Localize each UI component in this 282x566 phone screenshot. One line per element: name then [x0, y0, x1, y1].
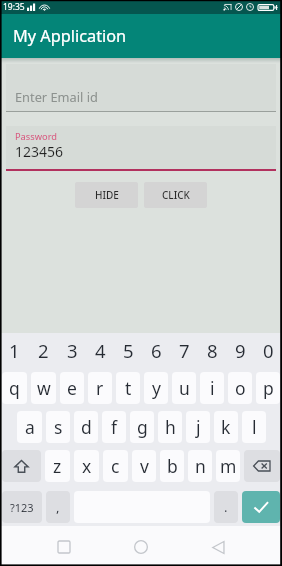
button[interactable]: u: [172, 372, 196, 404]
button[interactable]: Password: [6, 126, 276, 171]
staticText: r: [96, 376, 104, 400]
button[interactable]: CLICK: [144, 182, 207, 208]
staticText: o: [235, 376, 246, 400]
staticText: b: [167, 454, 178, 478]
button[interactable]: w: [31, 372, 56, 404]
button[interactable]: b: [160, 450, 184, 482]
staticText: HIDE: [95, 188, 119, 202]
button[interactable]: 6: [142, 333, 170, 368]
button[interactable]: a: [17, 411, 42, 443]
button[interactable]: Home: [121, 527, 161, 566]
staticText: q: [9, 376, 20, 400]
button[interactable]: Recents: [44, 527, 84, 566]
staticText: 4: [95, 338, 106, 363]
staticText: .: [224, 498, 228, 516]
staticText: z: [53, 454, 62, 478]
staticText: c: [111, 454, 120, 478]
staticText: 123456: [15, 142, 64, 161]
staticText: d: [81, 415, 92, 439]
button[interactable]: ,: [46, 491, 70, 523]
staticText: 3: [67, 338, 78, 363]
button[interactable]: Back: [198, 527, 238, 566]
button[interactable]: k: [214, 411, 238, 443]
button[interactable]: s: [46, 411, 70, 443]
staticText: k: [221, 415, 231, 439]
staticText: 1: [9, 338, 20, 363]
staticText: 5: [123, 338, 134, 363]
button[interactable]: d: [74, 411, 98, 443]
button[interactable]: e: [60, 372, 84, 404]
button[interactable]: y: [144, 372, 168, 404]
staticText: f: [111, 415, 118, 439]
staticText: l: [252, 415, 257, 439]
button[interactable]: 1: [0, 333, 29, 368]
staticText: m: [220, 454, 237, 478]
button[interactable]: h: [158, 411, 182, 443]
staticText: a: [25, 415, 35, 439]
button[interactable]: n: [188, 450, 212, 482]
button[interactable]: q: [2, 372, 27, 404]
button[interactable]: 2: [29, 333, 58, 368]
staticText: g: [137, 415, 148, 439]
button[interactable]: t: [116, 372, 140, 404]
button[interactable]: 0: [254, 333, 282, 368]
staticText: My Application: [13, 25, 127, 47]
staticText: ?123: [10, 500, 34, 515]
button[interactable]: z: [45, 450, 70, 482]
button[interactable]: 8: [198, 333, 226, 368]
button[interactable]: g: [130, 411, 154, 443]
staticText: j: [196, 415, 201, 439]
staticText: 8: [207, 338, 218, 363]
staticText: n: [195, 454, 206, 478]
staticText: e: [67, 376, 77, 400]
button[interactable]: i: [200, 372, 224, 404]
button[interactable]: x: [74, 450, 99, 482]
button[interactable]: 4: [86, 333, 114, 368]
staticText: w: [37, 376, 51, 400]
staticText: 19:35: [3, 1, 25, 13]
button[interactable]: m: [216, 450, 240, 482]
button[interactable]: v: [132, 450, 156, 482]
staticText: y: [152, 376, 161, 400]
button[interactable]: .: [214, 491, 238, 523]
staticText: ,: [56, 498, 60, 516]
button[interactable]: r: [88, 372, 112, 404]
staticText: 0: [263, 338, 274, 363]
button[interactable]: o: [228, 372, 252, 404]
staticText: t: [125, 376, 132, 400]
button[interactable]: 5: [114, 333, 142, 368]
button[interactable]: l: [242, 411, 266, 443]
button[interactable]: 3: [58, 333, 86, 368]
staticText: v: [140, 454, 149, 478]
staticText: Enter Email id: [15, 88, 98, 105]
staticText: 9: [235, 338, 246, 363]
button[interactable]: c: [103, 450, 128, 482]
staticText: x: [82, 454, 92, 478]
button[interactable]: Shift: [2, 450, 41, 482]
button[interactable]: f: [102, 411, 126, 443]
button[interactable]: 9: [226, 333, 254, 368]
button[interactable]: Enter: [242, 491, 280, 523]
button[interactable]: j: [186, 411, 210, 443]
button[interactable]: 7: [170, 333, 198, 368]
staticText: CLICK: [162, 188, 190, 202]
button[interactable]: Backspace: [244, 450, 280, 482]
staticText: 6: [151, 338, 162, 363]
staticText: h: [165, 415, 176, 439]
button[interactable]: ?123: [2, 491, 42, 523]
staticText: i: [210, 376, 215, 400]
button[interactable]: HIDE: [75, 182, 138, 208]
staticText: 7: [179, 338, 190, 363]
staticText: p: [263, 376, 274, 400]
staticText: u: [179, 376, 190, 400]
button[interactable]: Enter Email id: [6, 82, 276, 112]
button[interactable]: p: [256, 372, 280, 404]
staticText: 2: [38, 338, 49, 363]
staticText: Password: [15, 130, 58, 143]
staticText: s: [54, 415, 63, 439]
